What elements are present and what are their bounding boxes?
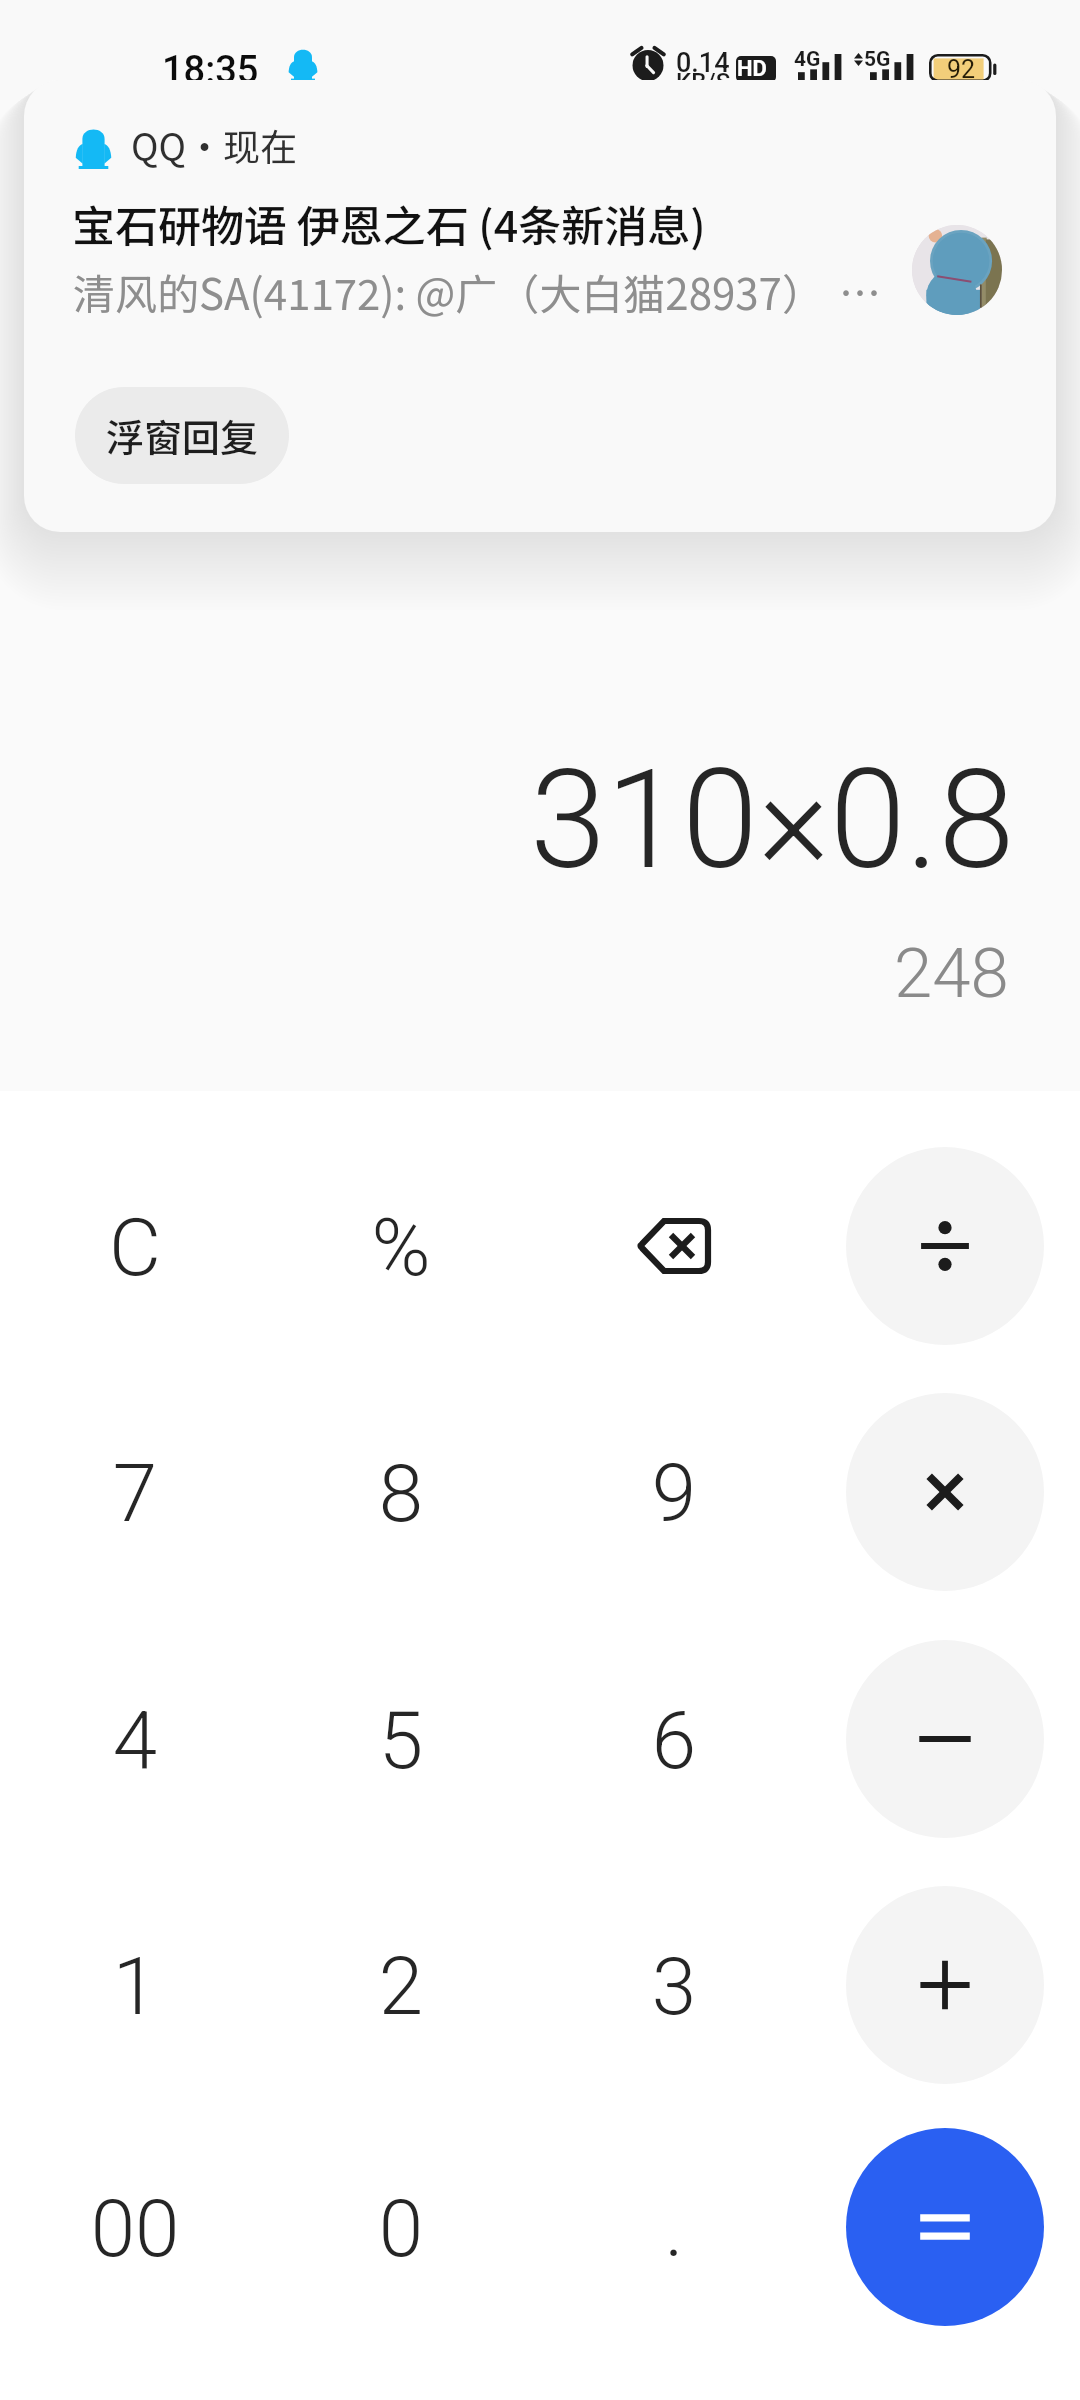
button[interactable]: 6 bbox=[569, 1634, 779, 1844]
button[interactable]: 0 bbox=[296, 2122, 506, 2332]
staticText: 4 bbox=[30, 1694, 240, 1788]
staticText: 9 bbox=[569, 1447, 779, 1541]
button[interactable]: Backspace bbox=[569, 1141, 779, 1351]
staticText: % bbox=[296, 1201, 506, 1295]
staticText: 6 bbox=[569, 1694, 779, 1788]
staticText: HD bbox=[737, 56, 767, 82]
button[interactable]: 2 bbox=[296, 1880, 506, 2090]
button[interactable]: 浮窗回复 bbox=[75, 387, 289, 484]
staticText: 2 bbox=[296, 1940, 506, 2034]
staticText: 310×0.8 bbox=[530, 740, 1015, 901]
button[interactable]: 00 bbox=[30, 2122, 240, 2332]
button[interactable]: 7 bbox=[30, 1387, 240, 1597]
button[interactable]: Minus bbox=[846, 1640, 1044, 1838]
staticText: 00 bbox=[30, 2182, 240, 2276]
staticText: 清风的SA(41172): @广（大白猫28937） bbox=[73, 261, 824, 322]
button[interactable]: C bbox=[30, 1141, 240, 1351]
button[interactable]: Multiply bbox=[846, 1393, 1044, 1591]
staticText: … bbox=[839, 261, 882, 322]
staticText: 18:35 bbox=[162, 48, 259, 93]
button[interactable]: 9 bbox=[569, 1387, 779, 1597]
staticText: QQ・现在 bbox=[131, 118, 297, 172]
staticText: 0.14 bbox=[676, 47, 730, 79]
button[interactable]: 8 bbox=[296, 1387, 506, 1597]
staticText: 宝石研物语 伊恩之石 (4条新消息) bbox=[72, 192, 706, 254]
button[interactable]: % bbox=[296, 1141, 506, 1351]
button[interactable]: 5 bbox=[296, 1634, 506, 1844]
staticText: 1 bbox=[30, 1940, 240, 2034]
button[interactable]: Plus bbox=[846, 1886, 1044, 2084]
button[interactable]: 1 bbox=[30, 1880, 240, 2090]
button[interactable]: QQ・现在 bbox=[24, 80, 1056, 532]
staticText: KB/S bbox=[676, 68, 731, 96]
button[interactable]: Equals bbox=[846, 2128, 1044, 2326]
button[interactable]: 3 bbox=[569, 1880, 779, 2090]
staticText: 92 bbox=[947, 55, 976, 84]
staticText: 248 bbox=[894, 933, 1009, 1014]
staticText: 5 bbox=[296, 1694, 506, 1788]
staticText: 浮窗回复 bbox=[106, 408, 259, 463]
staticText: 5G bbox=[864, 47, 891, 72]
staticText: 4G bbox=[794, 47, 821, 72]
staticText: 8 bbox=[296, 1447, 506, 1541]
staticText: . bbox=[569, 2182, 779, 2276]
staticText: 7 bbox=[30, 1447, 240, 1541]
staticText: 3 bbox=[569, 1940, 779, 2034]
button[interactable]: Divide bbox=[846, 1147, 1044, 1345]
staticText: 0 bbox=[296, 2182, 506, 2276]
button[interactable]: 4 bbox=[30, 1634, 240, 1844]
button[interactable]: . bbox=[569, 2122, 779, 2332]
staticText: C bbox=[30, 1201, 240, 1295]
